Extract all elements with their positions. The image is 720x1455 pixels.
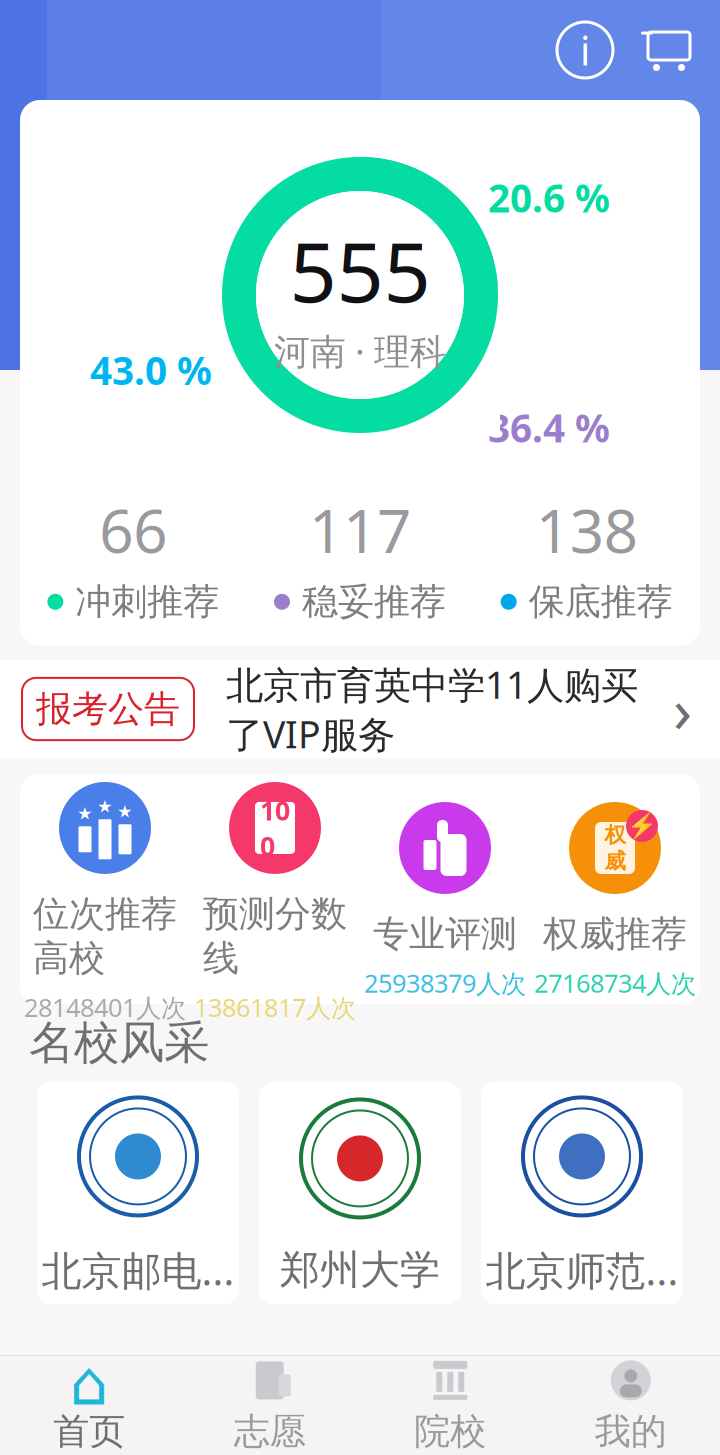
staticText: ⚡ (627, 812, 657, 840)
staticText: 首页 (53, 1409, 125, 1454)
button[interactable]: 专业评测 (360, 774, 530, 1004)
staticText: 43.0 % (90, 344, 212, 396)
staticText: 北京师范... (485, 1243, 678, 1296)
button[interactable]: Shopping cart (639, 20, 699, 80)
staticText: ⌂ (70, 1349, 109, 1418)
staticText: 28148401人次 (24, 990, 186, 1024)
staticText: 权威推荐 (543, 912, 687, 956)
staticText: › (673, 668, 692, 750)
button[interactable]: ★ (20, 754, 190, 1024)
staticText: 河南 · 理科 (274, 327, 446, 375)
staticText: 36.4 % (488, 402, 610, 453)
staticText: 预测分数线 (203, 892, 347, 980)
staticText: 专业评测 (373, 912, 517, 956)
button[interactable]: 志愿 (179, 1356, 360, 1455)
staticText: i (580, 23, 590, 76)
button[interactable]: 我的 (540, 1356, 720, 1455)
staticText: 27168734人次 (534, 966, 696, 1000)
staticText: 北京邮电... (41, 1243, 234, 1296)
staticText: ★ (97, 797, 113, 816)
staticText: 权 威 (604, 822, 625, 874)
button[interactable]: 权 威 (530, 774, 700, 1004)
button[interactable]: 北京师范... (481, 1082, 683, 1304)
button[interactable]: 郑州大学 (259, 1082, 461, 1304)
staticText: 位次推荐高校 (33, 892, 177, 980)
staticText: 稳妥推荐 (302, 580, 446, 624)
staticText: 报考公告 (36, 687, 180, 731)
staticText: ★ (117, 802, 133, 821)
staticText: 北京市育英中学11人购买了VIP服务 (226, 659, 638, 759)
staticText: 117 (309, 490, 411, 570)
staticText: 名校风采 (29, 1015, 209, 1071)
button[interactable]: 北京邮电... (37, 1082, 239, 1304)
staticText: 555 (289, 215, 430, 325)
staticText: 66 (99, 490, 167, 570)
staticText: 冲刺推荐 (75, 580, 219, 624)
staticText: 院校 (414, 1409, 486, 1454)
staticText: 13861817人次 (194, 990, 356, 1024)
button[interactable]: ⌂ (0, 1356, 179, 1455)
staticText: 25938379人次 (364, 966, 526, 1000)
staticText: 保底推荐 (529, 580, 673, 624)
staticText: 20.6 % (488, 172, 610, 223)
button[interactable]: Information (557, 22, 613, 78)
staticText: 100 (260, 792, 290, 863)
button[interactable]: 院校 (360, 1356, 540, 1455)
button[interactable]: 100 (190, 754, 360, 1024)
staticText: 我的 (595, 1409, 667, 1454)
staticText: 郑州大学 (280, 1245, 440, 1294)
staticText: ★ (77, 804, 93, 823)
staticText: 志愿 (234, 1409, 306, 1454)
staticText: 138 (536, 490, 638, 570)
button[interactable]: 报考公告 (0, 660, 720, 758)
